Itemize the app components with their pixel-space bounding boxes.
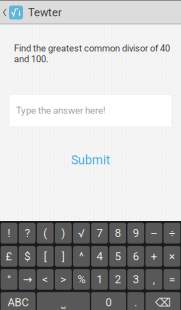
staticText: – (150, 227, 157, 240)
button[interactable]: 0 (91, 292, 126, 310)
staticText: + (151, 250, 157, 263)
staticText: ) (61, 227, 65, 240)
staticText: √ (78, 227, 85, 240)
button[interactable]: → (19, 269, 35, 290)
button[interactable]: ! (1, 223, 17, 244)
button[interactable]: ( (37, 223, 54, 244)
staticText: 7 (96, 227, 102, 240)
button[interactable]: × (163, 246, 180, 267)
button[interactable]: 7 (91, 223, 108, 244)
button[interactable]: – (145, 223, 162, 244)
button[interactable]: . (127, 292, 144, 310)
staticText: ( (43, 227, 47, 240)
button[interactable]: 4 (91, 246, 108, 267)
staticText: > (60, 273, 66, 286)
staticText: ] (62, 250, 65, 263)
button[interactable]: $ (19, 246, 35, 267)
staticText: 6 (133, 250, 139, 263)
staticText: 9 (133, 227, 139, 240)
button[interactable]: Back (0, 5, 23, 19)
staticText: = (169, 273, 175, 286)
staticText: ! (7, 227, 10, 240)
button[interactable]: > (55, 269, 72, 290)
button[interactable]: 2 (109, 269, 126, 290)
button[interactable]: Type the answer here! (10, 95, 171, 126)
staticText: < (42, 273, 48, 286)
button[interactable]: 5 (109, 246, 126, 267)
staticText: $ (24, 250, 30, 263)
staticText: 4 (96, 250, 102, 263)
button[interactable]: ? (19, 223, 35, 244)
staticText: £ (5, 250, 12, 263)
button[interactable]: 1 (91, 269, 108, 290)
staticText: 3 (133, 273, 139, 286)
button[interactable]: [ (37, 246, 54, 267)
button[interactable]: , (145, 269, 162, 290)
button[interactable]: ⎵ (37, 292, 90, 310)
staticText: Type the answer here! (16, 105, 105, 116)
button[interactable]: ° (1, 269, 17, 290)
button[interactable]: 8 (109, 223, 126, 244)
button[interactable]: < (37, 269, 54, 290)
button[interactable]: + (145, 246, 162, 267)
button[interactable]: ⌫ (145, 292, 180, 310)
button[interactable]: 6 (127, 246, 144, 267)
staticText: 2 (115, 273, 121, 286)
staticText: Submit (71, 153, 110, 167)
button[interactable]: % (73, 269, 90, 290)
button[interactable]: ] (55, 246, 72, 267)
button[interactable]: √ (73, 223, 90, 244)
staticText: ⌫ (155, 296, 171, 309)
button[interactable]: ) (55, 223, 72, 244)
staticText: 8 (115, 227, 121, 240)
button[interactable]: 9 (127, 223, 144, 244)
staticText: ABC (8, 296, 29, 309)
staticText: . (134, 296, 137, 309)
staticText: ? (25, 227, 30, 240)
staticText: ⎵ (61, 297, 65, 308)
button[interactable]: ÷ (163, 223, 180, 244)
button[interactable]: ^ (73, 246, 90, 267)
staticText: 1 (96, 273, 102, 286)
staticText: → (23, 273, 32, 286)
staticText: % (77, 273, 85, 286)
staticText: 5 (115, 250, 121, 263)
button[interactable]: Submit (71, 153, 110, 167)
staticText: ° (7, 273, 11, 286)
staticText: [ (44, 250, 47, 263)
button[interactable]: 3 (127, 269, 144, 290)
button[interactable]: ABC (1, 292, 35, 310)
staticText: 0 (106, 296, 112, 309)
button[interactable]: £ (1, 246, 17, 267)
staticText: Tewter (28, 6, 62, 19)
button[interactable]: = (163, 269, 180, 290)
staticText: ÷ (169, 227, 175, 240)
staticText: Find the greatest common divisor of 40 a… (14, 43, 170, 65)
staticText: × (169, 250, 175, 263)
staticText: ^ (79, 250, 84, 263)
staticText: , (153, 273, 155, 286)
